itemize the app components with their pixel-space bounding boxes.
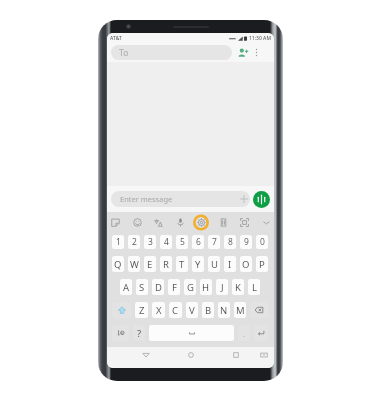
button[interactable]: 6 bbox=[192, 235, 204, 249]
staticText: G bbox=[187, 281, 194, 294]
button[interactable]: mic bbox=[172, 212, 188, 233]
button[interactable]: ? bbox=[133, 325, 145, 341]
button[interactable]: More options bbox=[251, 47, 262, 58]
button[interactable]: Add recipient bbox=[236, 46, 250, 60]
button[interactable]: Shift bbox=[112, 302, 131, 318]
button[interactable]: U bbox=[208, 256, 220, 272]
staticText: 1 bbox=[116, 236, 121, 248]
button[interactable]: sticker bbox=[107, 212, 123, 233]
button[interactable]: 2 bbox=[128, 235, 140, 249]
button[interactable]: Y bbox=[192, 256, 204, 272]
staticText: W bbox=[130, 258, 139, 271]
button[interactable]: O bbox=[240, 256, 252, 272]
staticText: N bbox=[220, 304, 228, 317]
button[interactable]: Back bbox=[138, 347, 154, 363]
button[interactable]: A bbox=[120, 279, 132, 295]
staticText: M bbox=[236, 304, 245, 317]
staticText: U bbox=[211, 258, 218, 271]
staticText: L bbox=[252, 281, 257, 294]
button[interactable]: B bbox=[202, 302, 214, 318]
button[interactable]: resize bbox=[236, 212, 252, 233]
staticText: J bbox=[221, 281, 224, 294]
staticText: P bbox=[259, 258, 265, 271]
staticText: Enter message bbox=[120, 194, 173, 204]
staticText: C bbox=[172, 304, 179, 317]
button[interactable]: Space bbox=[149, 325, 234, 341]
button[interactable]: T bbox=[176, 256, 188, 272]
button[interactable]: L bbox=[248, 279, 260, 295]
staticText: H bbox=[202, 281, 210, 294]
button[interactable]: Home bbox=[183, 347, 199, 363]
staticText: 0 bbox=[260, 236, 265, 248]
staticText: 2 bbox=[132, 236, 137, 248]
staticText: X bbox=[156, 304, 162, 317]
button[interactable]: translate bbox=[150, 212, 166, 233]
staticText: E bbox=[147, 258, 153, 271]
staticText: Y bbox=[195, 258, 201, 271]
staticText: . bbox=[243, 327, 246, 340]
staticText: To bbox=[119, 47, 129, 59]
button[interactable]: X bbox=[152, 302, 165, 318]
button[interactable]: gear bbox=[193, 212, 209, 233]
staticText: A bbox=[123, 281, 130, 294]
button[interactable]: Send bbox=[253, 191, 270, 208]
button[interactable]: R bbox=[160, 256, 172, 272]
staticText: 11:30 AM bbox=[249, 35, 271, 42]
button[interactable]: I bbox=[224, 256, 236, 272]
staticText: R bbox=[163, 258, 169, 271]
staticText: 6 bbox=[196, 236, 201, 248]
button[interactable]: C bbox=[169, 302, 182, 318]
button[interactable]: M bbox=[234, 302, 246, 318]
button[interactable]: S bbox=[136, 279, 148, 295]
button[interactable]: Enter message bbox=[111, 191, 250, 207]
button[interactable]: Z bbox=[135, 302, 148, 318]
button[interactable]: emoji bbox=[129, 212, 145, 233]
button[interactable]: Recent apps bbox=[228, 347, 244, 363]
button[interactable]: chevron bbox=[258, 212, 274, 233]
staticText: Q bbox=[114, 258, 122, 271]
staticText: K bbox=[235, 281, 241, 294]
button[interactable]: V bbox=[186, 302, 198, 318]
staticText: O bbox=[242, 258, 250, 271]
button[interactable]: To bbox=[111, 45, 232, 60]
staticText: 9 bbox=[244, 236, 249, 248]
button[interactable]: W bbox=[128, 256, 140, 272]
staticText: 8 bbox=[228, 236, 233, 248]
button[interactable]: 1 bbox=[112, 235, 124, 249]
button[interactable]: 3 bbox=[144, 235, 156, 249]
staticText: AT&T bbox=[110, 35, 122, 42]
button[interactable]: Enter bbox=[254, 325, 268, 341]
button[interactable]: 7 bbox=[208, 235, 220, 249]
button[interactable]: J bbox=[216, 279, 228, 295]
staticText: ? bbox=[137, 327, 142, 340]
button[interactable]: 8 bbox=[224, 235, 236, 249]
staticText: V bbox=[189, 304, 195, 317]
button[interactable]: 5 bbox=[176, 235, 188, 249]
button[interactable]: G bbox=[184, 279, 196, 295]
button[interactable]: 9 bbox=[240, 235, 252, 249]
staticText: D bbox=[155, 281, 162, 294]
staticText: S bbox=[139, 281, 145, 294]
button[interactable]: K bbox=[232, 279, 244, 295]
button[interactable]: 4 bbox=[160, 235, 172, 249]
button[interactable]: clip bbox=[215, 212, 231, 233]
staticText: 4 bbox=[164, 236, 169, 248]
button[interactable]: Q bbox=[112, 256, 124, 272]
button[interactable]: F bbox=[168, 279, 180, 295]
staticText: F bbox=[172, 281, 177, 294]
staticText: 3 bbox=[148, 236, 153, 248]
button[interactable]: Backspace bbox=[250, 302, 268, 318]
button[interactable]: H bbox=[200, 279, 212, 295]
button[interactable]: Symbols bbox=[112, 325, 129, 341]
button[interactable]: Hide keyboard bbox=[256, 347, 272, 363]
button[interactable]: N bbox=[218, 302, 230, 318]
button[interactable]: D bbox=[152, 279, 164, 295]
staticText: T bbox=[179, 258, 185, 271]
button[interactable]: P bbox=[256, 256, 268, 272]
staticText: B bbox=[205, 304, 212, 317]
button[interactable]: E bbox=[144, 256, 156, 272]
staticText: 5 bbox=[180, 236, 185, 248]
staticText: Z bbox=[139, 304, 145, 317]
button[interactable]: 0 bbox=[256, 235, 268, 249]
